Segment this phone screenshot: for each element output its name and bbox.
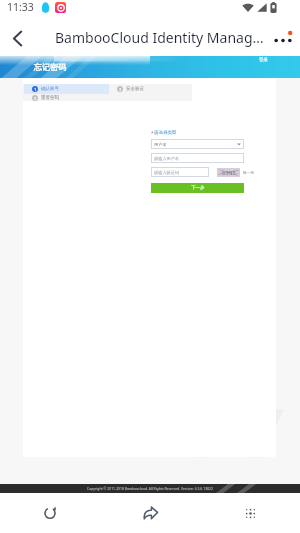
button[interactable]: 请输入用户名 — [151, 153, 244, 163]
button[interactable]: 1 — [24, 84, 109, 94]
button[interactable]: 请输入验证码 — [151, 167, 209, 177]
staticText: 用户名 — [154, 142, 167, 147]
staticText: 忘记密码 — [34, 62, 66, 72]
button[interactable]: 用户名 — [151, 139, 244, 149]
staticText: BambooCloud Identity Manag… — [55, 28, 266, 47]
staticText: 2 — [119, 87, 122, 92]
staticText: 请选择类型 — [154, 130, 177, 136]
button[interactable]: Back — [0, 21, 34, 55]
staticText: 请输入用户名 — [154, 156, 180, 161]
staticText: 确认账号 — [41, 86, 59, 92]
staticText: 3 — [34, 96, 37, 101]
button[interactable]: More options — [266, 21, 300, 55]
button[interactable]: Apps — [226, 493, 274, 533]
staticText: 安全验证 — [126, 86, 144, 92]
staticText: 63N5 — [222, 169, 236, 176]
button[interactable]: Refresh — [26, 493, 74, 533]
staticText: Copyright © 2011-2018 Bamboocloud. All R… — [87, 486, 213, 491]
staticText: 11:33 — [7, 0, 34, 14]
staticText: * — [151, 130, 154, 136]
staticText: 1 — [34, 87, 37, 92]
staticText: 请输入验证码 — [154, 170, 180, 175]
button[interactable]: Refresh captcha image — [217, 168, 240, 177]
staticText: 下一步 — [191, 185, 205, 191]
button[interactable]: 下一步 — [151, 183, 244, 193]
button[interactable]: Share — [126, 493, 174, 533]
button[interactable]: 换一张 — [243, 170, 255, 175]
button[interactable]: 3 — [24, 94, 109, 101]
button[interactable]: 2 — [109, 84, 192, 94]
staticText: 登录 — [259, 57, 268, 63]
staticText: 重置密码 — [41, 95, 59, 101]
